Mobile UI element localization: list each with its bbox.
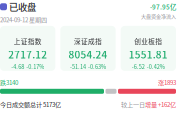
staticText: 1551.81 [129, 47, 168, 61]
staticText: 大盘资金净流入 [141, 12, 176, 20]
button[interactable]: 深证成指 [60, 26, 116, 71]
staticText: 较上一日 [121, 100, 145, 109]
staticText: -6.52 -0.42% [132, 62, 165, 70]
staticText: 8054.24 [68, 47, 107, 61]
staticText: 增量 +162亿 [145, 100, 176, 109]
staticText: 创业板指 [134, 36, 162, 46]
staticText: 深证成指 [74, 36, 102, 46]
button[interactable]: 上证指数 [0, 26, 55, 71]
staticText: 跌3140 [0, 78, 18, 87]
button[interactable]: 创业板指 [121, 26, 176, 71]
staticText: 2024-09-12 星期四 [0, 15, 47, 24]
staticText: 涨1893 [158, 78, 176, 87]
button[interactable]: 已收盘 [0, 0, 36, 13]
staticText: 2717.12 [8, 47, 47, 61]
staticText: -51.14 -0.63% [70, 62, 106, 70]
staticText: -97.95亿 [150, 2, 176, 11]
staticText: -4.68 -0.17% [11, 62, 44, 70]
button[interactable]: -97.95亿 [141, 0, 176, 20]
staticText: 上证指数 [14, 36, 42, 46]
staticText: 已收盘 [9, 0, 36, 13]
staticText: 今日成交额总计 5173亿 [0, 100, 61, 109]
